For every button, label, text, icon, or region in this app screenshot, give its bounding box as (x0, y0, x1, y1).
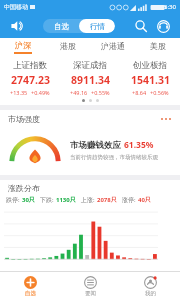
staticText: +0.49% (31, 89, 50, 96)
button[interactable]: 港股 (45, 38, 90, 56)
staticText: 8911.34 (71, 73, 110, 87)
button[interactable]: Customer service (154, 17, 172, 35)
staticText: +8.64 (132, 89, 147, 96)
staticText: 沪港通 (101, 41, 125, 51)
staticText: 30只 (22, 196, 35, 204)
staticText: +0.56% (150, 89, 169, 96)
staticText: 40只 (138, 196, 151, 204)
staticText: 5:30 (164, 3, 176, 11)
button[interactable]: 深证成指 (60, 60, 120, 96)
staticText: 2747.23 (11, 73, 50, 87)
staticText: 当前行情趋势较强，市场情绪较乐观 (70, 154, 158, 161)
staticText: 我的 (145, 290, 156, 297)
staticText: 1541.31 (131, 73, 170, 87)
staticText: 61.35% (124, 139, 154, 151)
staticText: 行情 (90, 22, 105, 31)
button[interactable]: Sound (8, 17, 26, 35)
staticText: 涨停: (122, 196, 136, 204)
button[interactable]: 自选 (0, 272, 60, 300)
staticText: 中国移动 (4, 3, 28, 11)
staticText: 跌停: (6, 196, 20, 204)
staticText: +49.16 (70, 89, 88, 96)
staticText: 创业板指 (133, 60, 167, 71)
staticText: 要闻 (85, 290, 96, 297)
button[interactable]: 创业板指 (120, 60, 180, 96)
staticText: 市场赚钱效应 (70, 140, 121, 151)
staticText: +0.55% (91, 89, 110, 96)
button[interactable]: 沪港通 (90, 38, 135, 56)
staticText: 涨跌分布 (8, 183, 40, 193)
staticText: +13.35 (10, 89, 28, 96)
button[interactable]: 沪深 (0, 38, 45, 56)
button[interactable]: 美股 (135, 38, 180, 56)
staticText: 自选 (25, 290, 36, 297)
staticText: 市场强度 (8, 114, 40, 124)
button[interactable]: 我的 (120, 272, 180, 300)
button[interactable]: 市场强度 (8, 110, 172, 128)
staticText: 2078只 (97, 196, 117, 204)
staticText: 1130只 (56, 196, 76, 204)
staticText: 港股 (60, 41, 76, 51)
button[interactable]: 要闻 (60, 272, 120, 300)
staticText: 自选 (54, 22, 69, 31)
staticText: 沪深 (15, 40, 31, 50)
button[interactable]: 上证指数 (0, 60, 60, 96)
staticText: 下跌: (40, 196, 54, 204)
button[interactable]: 自选 (43, 19, 79, 33)
staticText: 美股 (150, 41, 166, 51)
button[interactable]: 行情 (79, 19, 115, 33)
button[interactable]: Search (132, 17, 150, 35)
staticText: 深证成指 (73, 60, 107, 71)
staticText: 上证指数 (13, 60, 47, 71)
staticText: 上涨: (81, 196, 95, 204)
